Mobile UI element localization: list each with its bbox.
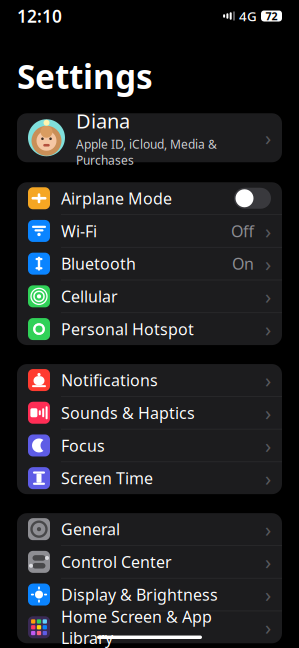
- staticText: ›: [265, 465, 271, 491]
- staticText: Sounds & Haptics: [61, 402, 195, 423]
- staticText: Notifications: [61, 369, 158, 391]
- staticText: On: [232, 253, 254, 274]
- staticText: ›: [265, 124, 271, 151]
- staticText: ›: [265, 614, 271, 641]
- button[interactable]: Focus: [17, 429, 282, 462]
- staticText: ›: [265, 549, 271, 575]
- button[interactable]: Notifications: [17, 364, 282, 397]
- button[interactable]: Bluetooth: [17, 248, 282, 280]
- staticText: ›: [265, 432, 271, 459]
- staticText: Wi-Fi: [61, 220, 97, 241]
- staticText: Apple ID, iCloud, Media & Purchases: [76, 136, 217, 168]
- staticText: 12:10: [17, 4, 62, 27]
- button[interactable]: General: [17, 513, 282, 546]
- button[interactable]: Display & Brightness: [17, 579, 282, 611]
- button[interactable]: Home Screen & App Library: [17, 611, 282, 643]
- staticText: ›: [265, 516, 271, 542]
- button[interactable]: Diana: [0, 113, 299, 162]
- staticText: 72: [265, 9, 277, 23]
- staticText: Off: [231, 220, 254, 241]
- staticText: Control Center: [61, 551, 172, 572]
- button[interactable]: Sounds & Haptics: [17, 397, 282, 429]
- staticText: ›: [265, 250, 271, 277]
- staticText: Diana: [76, 107, 130, 134]
- staticText: ›: [265, 283, 271, 310]
- staticText: Display & Brightness: [61, 584, 218, 605]
- staticText: ›: [265, 367, 271, 393]
- staticText: ›: [265, 399, 271, 426]
- staticText: Personal Hotspot: [61, 318, 194, 340]
- staticText: 4G: [239, 7, 257, 25]
- staticText: Bluetooth: [61, 253, 136, 274]
- staticText: ›: [265, 316, 271, 342]
- staticText: General: [61, 518, 120, 540]
- button[interactable]: Personal Hotspot: [17, 313, 282, 345]
- staticText: Airplane Mode: [61, 188, 172, 209]
- button[interactable]: Airplane Mode: [17, 182, 282, 215]
- button[interactable]: Cellular: [17, 280, 282, 313]
- button[interactable]: Screen Time: [17, 462, 282, 494]
- staticText: Settings: [17, 54, 153, 98]
- staticText: Focus: [61, 435, 105, 456]
- staticText: Screen Time: [61, 467, 153, 489]
- staticText: ›: [265, 218, 271, 244]
- button[interactable]: Wi-Fi: [17, 215, 282, 248]
- staticText: Home Screen & App Library: [61, 606, 212, 648]
- staticText: Cellular: [61, 286, 118, 307]
- staticText: ›: [265, 581, 271, 608]
- button[interactable]: Control Center: [17, 546, 282, 579]
